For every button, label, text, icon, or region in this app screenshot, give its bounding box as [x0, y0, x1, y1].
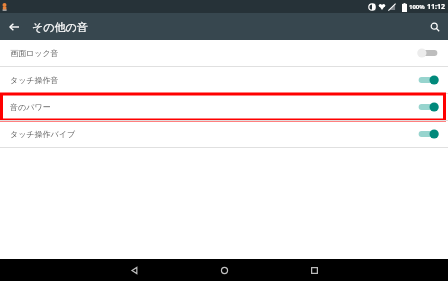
button[interactable]: Home — [179, 259, 269, 281]
staticText: その他の音 — [32, 20, 88, 34]
staticText: タッチ操作音 — [10, 75, 59, 85]
staticText: 100% — [409, 3, 425, 11]
button[interactable]: 音のパワー — [0, 94, 448, 120]
button[interactable]: 画面ロック音 — [0, 40, 448, 66]
button[interactable]: Off — [416, 46, 440, 60]
staticText: タッチ操作バイブ — [10, 129, 76, 139]
button[interactable]: Recents — [269, 259, 359, 281]
button[interactable]: On — [416, 73, 440, 87]
staticText: 11:12 — [427, 2, 445, 12]
button[interactable]: タッチ操作バイブ — [0, 121, 448, 147]
button[interactable]: Search — [421, 13, 448, 40]
staticText: 音のパワー — [10, 102, 51, 112]
button[interactable]: On — [416, 127, 440, 141]
button[interactable]: On — [416, 100, 440, 114]
button[interactable]: タッチ操作音 — [0, 67, 448, 93]
button[interactable]: Back — [89, 259, 179, 281]
button[interactable]: Back — [0, 13, 27, 40]
staticText: 画面ロック音 — [10, 48, 59, 58]
